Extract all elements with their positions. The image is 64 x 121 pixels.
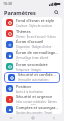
button[interactable]: Fond d'écran et style [2,17,62,28]
staticText: Fréquence · Images [16,68,41,72]
staticText: 10:30 [3,1,12,6]
staticText: Thème · Écran d'accueil · Icônes [16,35,56,39]
button[interactable]: Comptes et sauvegarde [2,105,62,114]
button[interactable]: Écran d'accueil [2,39,62,50]
staticText: Sécurité et confidentialité [18,72,57,77]
staticText: Fond d'écran et style [16,18,55,23]
button[interactable]: Position [2,83,62,94]
staticText: Paramètres [4,9,36,16]
staticText: Verrouiller autorisations · Localisation [18,78,57,83]
staticText: Gestion des comptes · Smart Switch [16,111,59,114]
button[interactable]: Écran secondaire [2,61,62,72]
button[interactable]: Récents [0,114,22,121]
staticText: Infos contact médicales · Alertes d'urge… [16,100,59,105]
staticText: Position [16,84,32,89]
staticText: Écran d'accueil [16,39,44,44]
staticText: Verrouillage écran allumé · Always On [16,56,59,61]
button[interactable]: Sécurité et urgence [2,94,62,105]
staticText: Disposition · Badges d'icône · Applicati… [16,45,59,50]
button[interactable]: Accueil [22,114,43,121]
button[interactable]: Rechercher [53,9,60,16]
button[interactable]: Retour [43,114,64,121]
staticText: Écran de verrouillage et AOD [16,50,59,55]
button[interactable]: Sécurité et confidentialité [4,72,60,83]
staticText: Écran secondaire [16,62,48,67]
button[interactable]: Écran de verrouillage et AOD [2,50,62,61]
button[interactable]: Thèmes [2,28,62,39]
staticText: Comptes et sauvegarde [16,105,59,110]
staticText: Accès à la localisation [16,90,44,94]
staticText: Sécurité et urgence [16,94,53,99]
staticText: Thèmes [16,29,31,34]
staticText: Couleurs · Styles de couleurs [16,24,53,28]
